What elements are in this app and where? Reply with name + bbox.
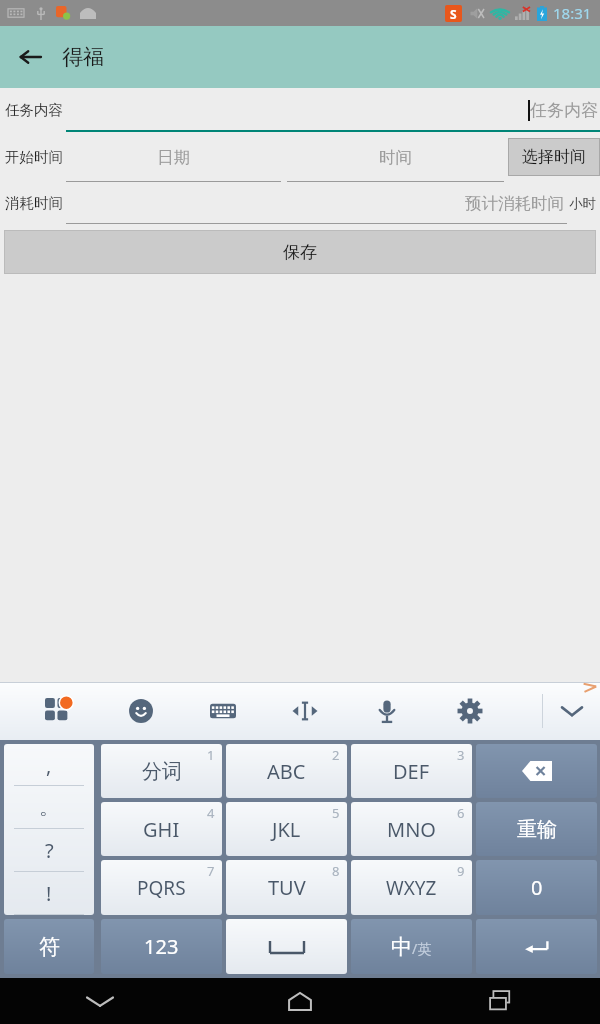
button[interactable]: Settings [446,687,494,735]
staticText: 0 [531,874,543,901]
staticText: PQRS [137,875,186,901]
staticText: 中 [391,934,412,960]
staticText: 3 [457,746,465,764]
button[interactable]: WXYZ [351,860,472,915]
staticText: 18:31 [553,3,592,23]
button[interactable]: MNO [351,802,472,856]
staticText: 符 [39,934,60,960]
staticText: 123 [144,933,179,960]
staticText: 任务内容 [530,100,598,121]
button[interactable]: Space [226,919,347,974]
staticText: 消耗时间 [5,194,63,212]
button[interactable]: 符 [4,919,94,974]
staticText: 4 [207,804,215,822]
button[interactable]: 保存 [4,230,596,274]
button[interactable]: 时间 [287,132,504,182]
button[interactable]: 选择时间 [508,138,600,176]
staticText: 预计消耗时间 [465,193,564,214]
staticText: 得福 [62,44,104,70]
staticText: DEF [393,758,430,785]
button[interactable]: 中 [351,919,472,974]
staticText: 分词 [142,759,182,784]
button[interactable]: Keyboard [199,687,247,735]
staticText: 重输 [517,817,557,842]
button[interactable]: , [4,744,94,915]
button[interactable]: Back [10,37,50,77]
staticText: 。 [39,795,59,820]
staticText: ABC [267,758,306,785]
button[interactable]: Recent apps [400,978,600,1024]
button[interactable]: Move cursor [281,687,329,735]
staticText: ? [45,837,54,864]
button[interactable]: GHI [101,802,222,856]
staticText: 1 [207,746,215,764]
staticText: /英 [412,939,432,958]
button[interactable]: Hide keyboard [544,682,600,740]
staticText: TUV [268,874,306,901]
button[interactable]: 日期 [66,132,281,182]
staticText: 9 [457,862,465,880]
staticText: 7 [207,862,215,880]
button[interactable]: 分词 [101,744,222,798]
staticText: 保存 [283,242,317,263]
staticText: MNO [387,816,436,843]
button[interactable]: Hide keyboard [0,978,200,1024]
staticText: ! [46,880,52,907]
button[interactable]: 重输 [476,802,597,856]
button[interactable]: Voice input [363,687,411,735]
staticText: 8 [332,862,340,880]
staticText: 选择时间 [522,147,586,167]
staticText: WXYZ [386,875,437,901]
staticText: 时间 [379,147,412,168]
staticText: 6 [457,804,465,822]
button[interactable]: Home [200,978,400,1024]
staticText: 日期 [157,147,190,168]
button[interactable]: 0 [476,860,597,915]
button[interactable]: Enter [476,919,597,974]
button[interactable]: 123 [101,919,222,974]
staticText: 2 [332,746,340,764]
button[interactable]: Backspace [476,744,597,798]
button[interactable]: ABC [226,744,347,798]
button[interactable]: JKL [226,802,347,856]
staticText: S [450,6,457,22]
staticText: 开始时间 [5,148,63,166]
staticText: JKL [272,816,301,843]
button[interactable]: Apps [34,687,82,735]
staticText: 任务内容 [5,101,63,119]
staticText: GHI [143,816,180,843]
button[interactable]: Emoji [117,687,165,735]
button[interactable]: PQRS [101,860,222,915]
button[interactable]: TUV [226,860,347,915]
staticText: 5 [332,804,340,822]
staticText: 小时 [569,195,596,212]
button[interactable]: DEF [351,744,472,798]
staticText: , [46,752,52,779]
